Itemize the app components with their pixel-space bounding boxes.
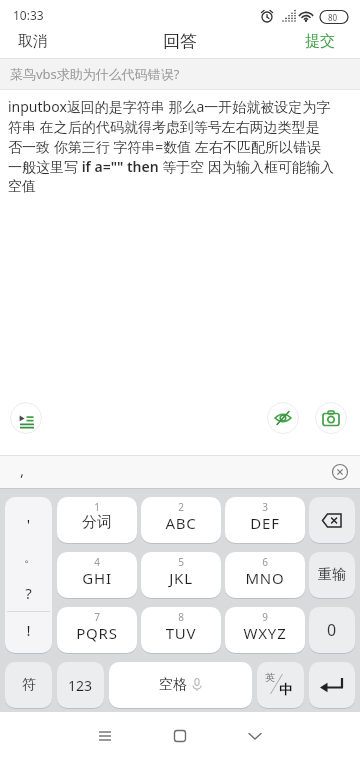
button[interactable] (10, 402, 42, 434)
staticText: MNO (225, 568, 305, 588)
button[interactable] (315, 402, 347, 434)
staticText: 。 (7, 549, 52, 565)
staticText: 3 (225, 500, 305, 514)
staticText: 提交 (305, 32, 335, 51)
staticText: 9 (225, 610, 305, 624)
button[interactable]: 5 (141, 552, 221, 598)
button[interactable]: 4 (57, 552, 137, 598)
staticText: 6 (225, 555, 305, 569)
button[interactable]: 8 (141, 607, 221, 653)
staticText: TUV (141, 623, 221, 643)
staticText: ' (5, 514, 52, 534)
staticText: GHI (57, 568, 137, 588)
button[interactable] (309, 497, 355, 543)
button[interactable]: 空格 (109, 662, 252, 708)
button[interactable]: 英 (257, 662, 304, 708)
staticText: PQRS (57, 623, 137, 643)
button[interactable]: 7 (57, 607, 137, 653)
staticText: 符 (22, 676, 36, 694)
staticText: 0 (327, 619, 337, 641)
button[interactable]: 6 (225, 552, 305, 598)
staticText: 分词 (57, 513, 137, 532)
staticText: 4 (57, 555, 137, 569)
staticText: 8 (141, 610, 221, 624)
button[interactable] (309, 662, 355, 708)
button[interactable]: 2 (141, 497, 221, 543)
button[interactable]: 3 (225, 497, 305, 543)
button[interactable]: ' (5, 497, 52, 653)
button[interactable] (328, 460, 352, 484)
staticText: WXYZ (225, 623, 305, 643)
button[interactable]: 重输 (309, 552, 355, 598)
staticText: 2 (141, 500, 221, 514)
button[interactable]: 123 (57, 662, 104, 708)
staticText: 空格 (159, 676, 187, 694)
button[interactable]: 符 (5, 662, 52, 708)
staticText: 菜鸟vbs求助为什么代码错误? (10, 65, 180, 83)
staticText: 1 (57, 500, 137, 514)
button[interactable]: 9 (225, 607, 305, 653)
staticText: 取消 (18, 32, 48, 51)
staticText: JKL (141, 568, 221, 588)
staticText: 英 (265, 671, 275, 684)
staticText: ? (5, 583, 52, 603)
staticText: 80 (328, 12, 338, 23)
button[interactable]: 0 (309, 607, 355, 653)
button[interactable]: 取消 (10, 25, 66, 57)
button[interactable] (267, 402, 299, 434)
staticText: 中 (279, 681, 292, 697)
staticText: 重输 (318, 566, 346, 584)
button[interactable]: 1 (57, 497, 137, 543)
staticText: 7 (57, 610, 137, 624)
staticText: , (20, 460, 25, 480)
staticText: ABC (141, 513, 221, 533)
staticText: 回答 (163, 31, 197, 52)
staticText: DEF (225, 513, 305, 533)
button[interactable]: 提交 (290, 25, 350, 57)
staticText: 5 (141, 555, 221, 569)
staticText: inputbox返回的是字符串 那么a一开始就被设定为字 符串 在之后的代码就得… (8, 97, 352, 197)
staticText: 10:33 (13, 7, 44, 23)
staticText: ! (5, 620, 52, 640)
staticText: 123 (68, 676, 93, 695)
